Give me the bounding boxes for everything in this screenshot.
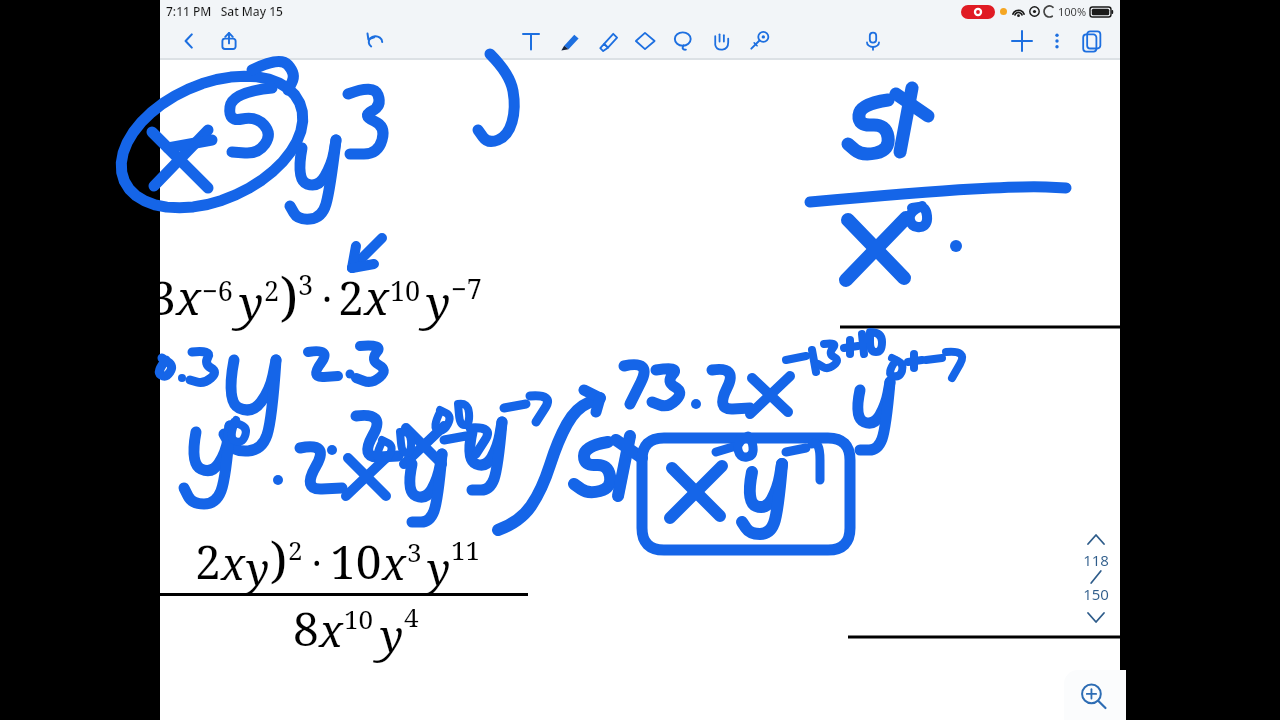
staticText: 11 <box>451 532 481 567</box>
button[interactable]: Zoom in <box>1064 670 1126 720</box>
button[interactable]: Previous page <box>1078 528 1114 550</box>
button[interactable]: Share <box>212 22 246 60</box>
button[interactable]: Microphone <box>854 22 892 60</box>
staticText: · <box>312 536 322 588</box>
staticText: 2 <box>338 266 364 329</box>
staticText: 150 <box>1083 584 1109 604</box>
button[interactable]: Add page <box>1002 22 1042 60</box>
staticText: x <box>221 533 246 593</box>
staticText: −7 <box>451 270 482 307</box>
staticText: 8 <box>293 597 319 660</box>
staticText: · <box>322 271 332 325</box>
staticText: y <box>427 538 451 598</box>
staticText: y <box>380 605 404 665</box>
staticText: 3 <box>298 266 314 303</box>
staticText: 2 <box>288 532 303 567</box>
staticText: x <box>364 266 390 329</box>
staticText: 2 <box>264 272 280 309</box>
button[interactable]: Text tool <box>512 22 550 60</box>
staticText: y <box>246 538 270 598</box>
staticText: 118 <box>1083 550 1109 570</box>
button[interactable]: Shape tool <box>740 22 778 60</box>
staticText: x <box>176 266 202 329</box>
staticText: 3 <box>150 266 176 329</box>
staticText: 10 <box>390 272 421 309</box>
staticText: ) <box>270 525 288 593</box>
staticText: 3 <box>407 534 422 569</box>
staticText: 10 <box>344 601 374 636</box>
button[interactable]: Lasso select <box>664 22 702 60</box>
button[interactable]: Eraser <box>626 22 664 60</box>
button[interactable]: Hand tool <box>702 22 740 60</box>
button[interactable]: Highlighter <box>588 22 626 60</box>
staticText: 100% <box>1058 4 1087 19</box>
staticText: x <box>319 600 344 660</box>
button[interactable]: Undo <box>358 22 392 60</box>
staticText: 2 <box>195 530 221 593</box>
staticText: ) <box>280 260 298 331</box>
staticText: y <box>426 271 451 334</box>
staticText: x <box>382 533 407 593</box>
button[interactable]: Next page <box>1078 606 1114 628</box>
staticText: y <box>239 271 264 334</box>
button[interactable]: More options <box>1042 26 1072 56</box>
staticText: −6 <box>202 272 233 309</box>
staticText: 4 <box>404 599 419 634</box>
button[interactable]: Back <box>172 22 206 60</box>
button[interactable]: Pen <box>550 22 588 60</box>
button[interactable]: Pages <box>1072 22 1112 60</box>
staticText: 7:11 PM Sat May 15 <box>166 3 283 19</box>
staticText: 10 <box>330 530 382 593</box>
